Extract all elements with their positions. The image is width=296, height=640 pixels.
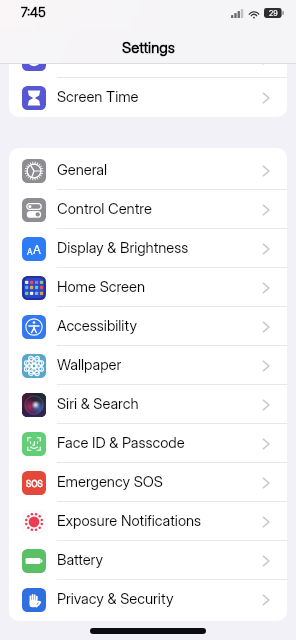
button[interactable]: Focus (9, 39, 287, 78)
staticText: Exposure Notifications (57, 512, 202, 530)
button[interactable]: Home Screen (9, 268, 287, 307)
staticText: Siri & Search (57, 395, 139, 413)
button[interactable]: Accessibility (9, 307, 287, 346)
staticText: Wallpaper (57, 356, 122, 374)
button[interactable]: Siri & Search (9, 385, 287, 424)
staticText: Accessibility (57, 317, 138, 335)
button[interactable]: SOS (9, 463, 287, 502)
button[interactable]: Face ID & Passcode (9, 424, 287, 463)
button[interactable]: Exposure Notifications (9, 502, 287, 541)
staticText: General (57, 161, 108, 179)
button[interactable]: Screen Time (9, 78, 287, 117)
staticText: Privacy & Security (57, 590, 174, 608)
staticText: Face ID & Passcode (57, 434, 185, 452)
staticText: 29 (269, 9, 278, 18)
button[interactable]: A (9, 229, 287, 268)
staticText: Emergency SOS (57, 473, 163, 491)
staticText: Settings (122, 38, 175, 56)
staticText: Home Screen (57, 278, 146, 296)
button[interactable]: Battery (9, 541, 287, 580)
staticText: A (33, 242, 41, 257)
staticText: Screen Time (57, 88, 139, 106)
staticText: Focus (57, 49, 97, 67)
staticText: Control Centre (57, 200, 152, 218)
staticText: A (27, 247, 33, 257)
button[interactable]: Wallpaper (9, 346, 287, 385)
staticText: Display & Brightness (57, 239, 189, 257)
button[interactable]: Control Centre (9, 190, 287, 229)
staticText: 7:45 (21, 4, 46, 20)
staticText: SOS (26, 479, 43, 489)
staticText: Battery (57, 551, 104, 569)
button[interactable]: General (9, 151, 287, 190)
button[interactable]: Privacy & Security (9, 580, 287, 619)
